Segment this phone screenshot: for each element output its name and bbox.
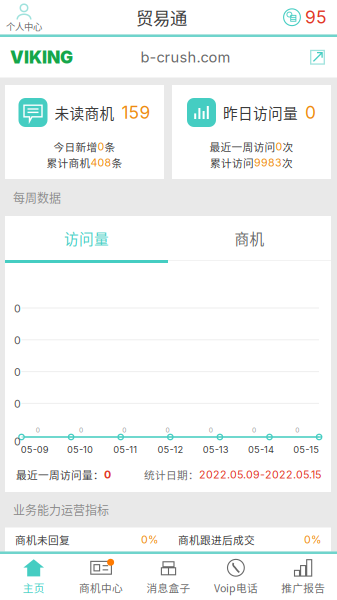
staticText: 0 [14,397,21,410]
button[interactable]: 消息盒子 [135,553,202,600]
staticText: 未读商机 [54,102,114,123]
staticText: 0 [252,426,256,434]
button[interactable]: Voip电话 [202,553,270,600]
staticText: 2022.05.09-2022.05.15 [199,468,321,481]
staticText: 05-15 [293,444,319,455]
staticText: 0 [14,302,21,315]
staticText: 访问量 [64,227,109,249]
staticText: 408 [90,156,111,169]
staticText: 05-10 [67,444,93,455]
button[interactable]: 个人中心 [0,1,48,33]
staticText: 消息盒子 [146,580,190,595]
staticText: Voip电话 [214,580,258,595]
staticText: 累计访问 [210,155,254,170]
button[interactable]: 商机 [168,216,331,263]
staticText: 统计日期： [144,467,199,482]
staticText: 推广报告 [281,580,325,595]
button[interactable]: 推广报告 [270,553,337,600]
button[interactable]: 商机中心 [67,553,135,600]
staticText: 0% [141,533,158,546]
staticText: 0 [209,426,213,434]
button[interactable]: 95 [275,7,337,28]
staticText: 159 [121,102,150,123]
staticText: 0 [122,426,126,434]
button[interactable]: 访问量 [5,216,168,263]
staticText: 0 [14,435,21,448]
staticText: 9983 [254,156,282,169]
staticText: 0 [97,140,104,153]
staticText: 昨日访问量 [223,102,298,123]
staticText: 95 [305,7,327,28]
staticText: VIKING [10,47,73,68]
staticText: 最近一周访问量： [16,467,104,482]
staticText: 0% [304,533,321,546]
staticText: 05-14 [248,444,274,455]
staticText: 0 [295,426,299,434]
staticText: 05-11 [113,444,137,455]
staticText: 05-12 [157,444,183,455]
button[interactable]: Open in browser [298,42,337,73]
staticText: 05-09 [21,444,49,455]
staticText: 0 [79,426,83,434]
staticText: 最近一周访问 [209,139,275,154]
staticText: 商机中心 [79,580,123,595]
staticText: 0 [104,468,111,481]
staticText: 今日新增 [53,139,97,154]
staticText: 商机跟进后成交 [178,532,255,547]
staticText: 0 [14,334,21,347]
staticText: 条 [111,155,122,170]
staticText: 累计商机 [46,155,90,170]
button[interactable]: 主页 [0,553,67,600]
staticText: 条 [104,139,115,154]
staticText: 业务能力运营指标 [13,501,109,518]
staticText: 0 [275,140,282,153]
staticText: 0 [305,102,316,123]
staticText: 05-13 [203,444,229,455]
staticText: 每周数据 [13,189,61,206]
staticText: 商机未回复 [15,532,70,547]
staticText: 个人中心 [6,19,42,33]
staticText: b-crush.com [140,48,230,66]
staticText: 次 [282,139,293,154]
staticText: 0 [36,426,40,434]
staticText: 贸易通 [136,5,187,30]
staticText: 主页 [23,580,45,595]
staticText: 商机 [234,227,264,249]
staticText: 0 [14,366,21,378]
staticText: 次 [282,155,293,170]
staticText: 0 [165,426,169,434]
